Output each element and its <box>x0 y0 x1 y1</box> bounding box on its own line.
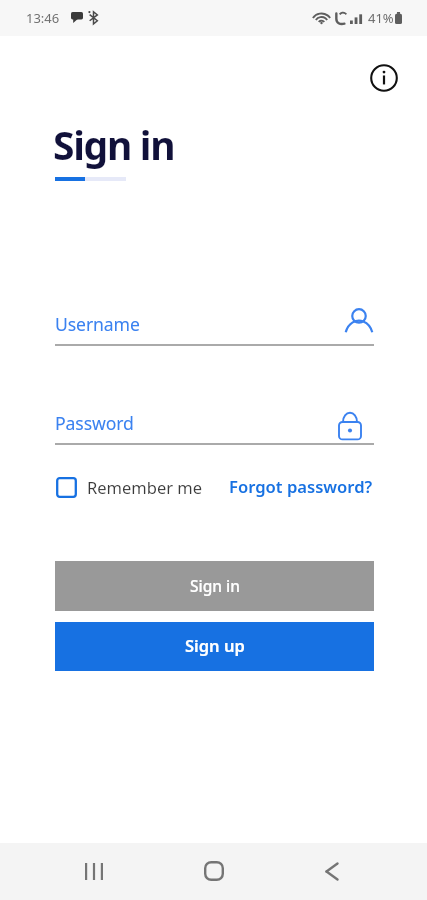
staticText: Remember me <box>87 476 203 498</box>
button[interactable]: Forgot password? <box>229 470 373 502</box>
button[interactable]: Home <box>190 847 238 895</box>
staticText: Sign up <box>185 634 245 656</box>
button[interactable]: Remember me <box>50 471 203 503</box>
staticText: Username <box>55 312 140 336</box>
button[interactable]: Sign up <box>55 622 374 671</box>
button[interactable]: Recents <box>70 847 118 895</box>
staticText: 13:46 <box>26 9 60 27</box>
staticText: Password <box>55 411 134 435</box>
button[interactable]: Username field <box>55 305 374 347</box>
staticText: Forgot password? <box>229 475 373 498</box>
button[interactable]: Back <box>308 847 356 895</box>
button[interactable]: Sign in <box>55 561 374 611</box>
staticText: Sign in <box>190 575 240 596</box>
button[interactable]: Password field <box>55 404 374 446</box>
button[interactable]: Info <box>362 56 405 99</box>
staticText: 41% <box>368 9 394 27</box>
staticText: Sign in <box>53 118 175 171</box>
